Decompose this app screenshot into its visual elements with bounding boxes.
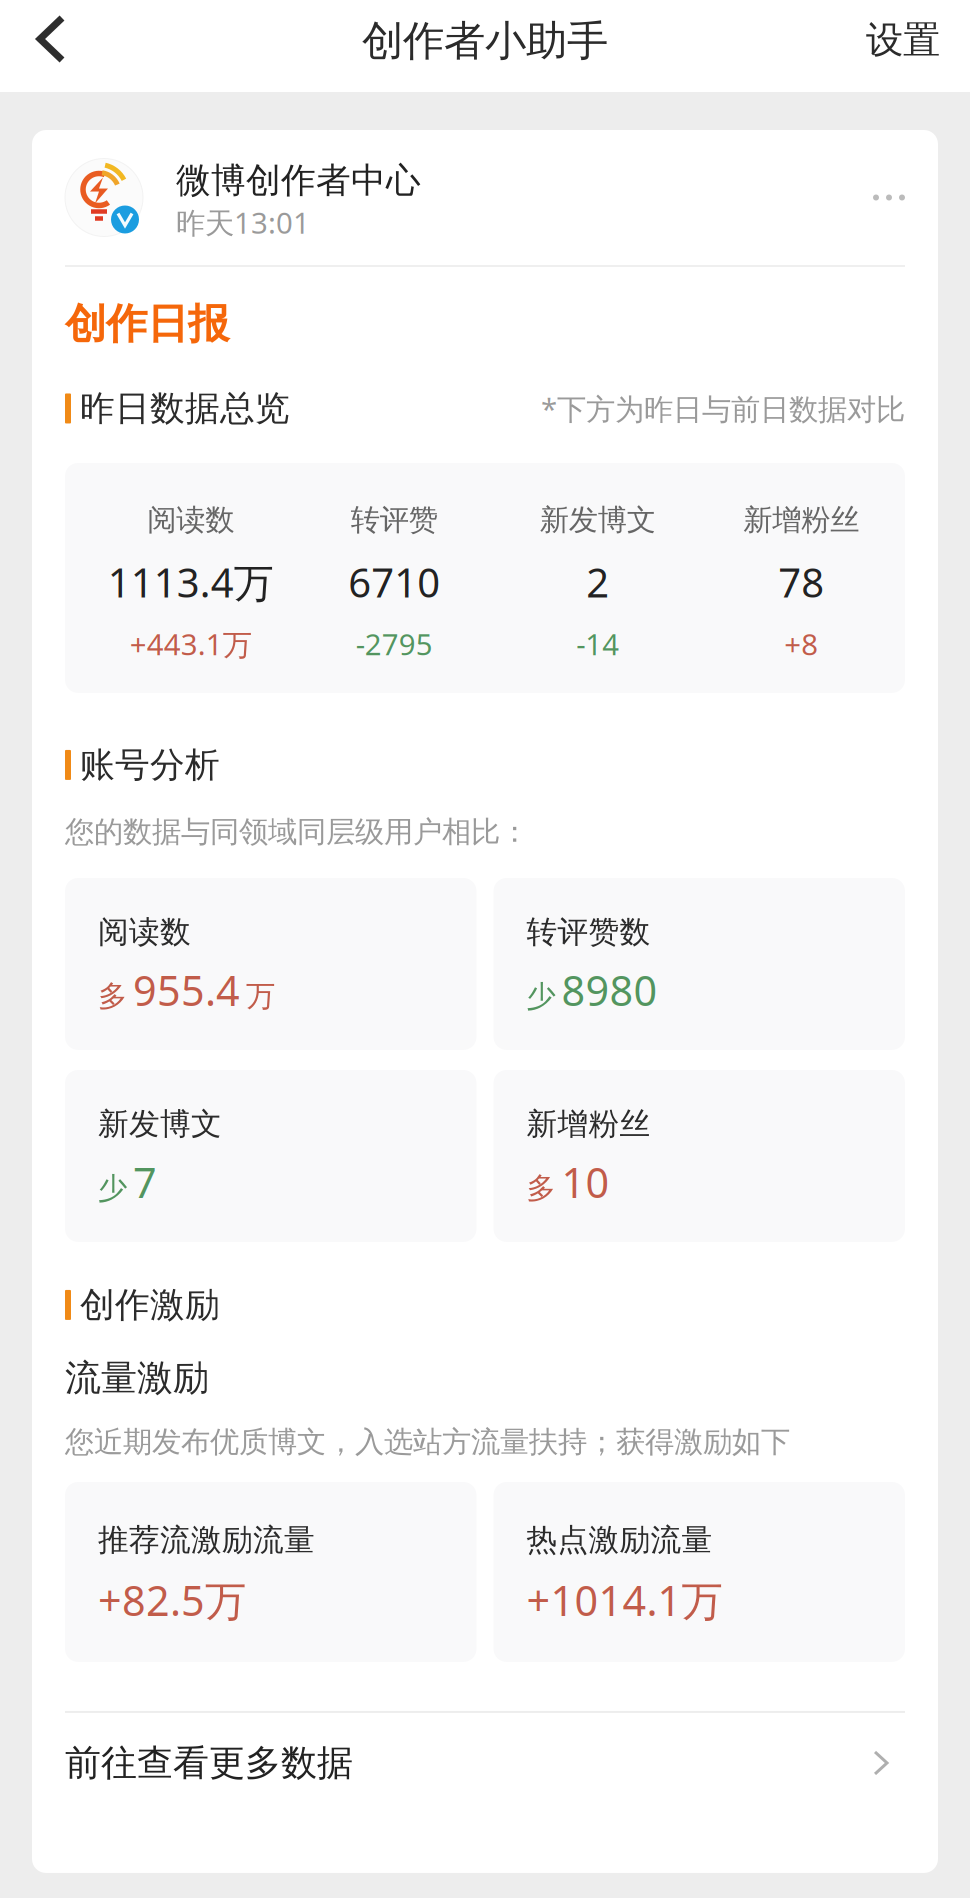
staticText: 6710 [348,555,440,608]
staticText: 7 [133,1154,157,1209]
staticText: 阅读数 [147,502,234,538]
staticText: -2795 [356,624,433,663]
staticText: 昨天13:01 [176,203,310,242]
staticText: 前往查看更多数据 [65,1741,353,1785]
staticText: 流量激励 [65,1356,209,1400]
staticText: 创作日报 [65,299,229,349]
staticText: +82.5万 [98,1572,246,1627]
staticText: 多 [526,1170,555,1206]
staticText: 1113.4万 [108,555,274,608]
staticText: 昨日数据总览 [80,387,290,430]
staticText: 万 [246,978,275,1014]
staticText: 新增粉丝 [526,1105,650,1143]
staticText: *下方为昨日与前日数据对比 [541,389,905,428]
staticText: 8980 [561,962,657,1017]
staticText: 新增粉丝 [743,502,859,538]
staticText: 新发博文 [98,1105,222,1143]
staticText: 78 [778,555,824,608]
staticText: 多 [98,978,127,1014]
staticText: 微博创作者中心 [176,159,421,202]
staticText: 设置 [866,17,940,63]
staticText: 10 [561,1154,609,1209]
button[interactable]: More options [859,180,905,214]
staticText: 创作激励 [80,1284,220,1326]
button[interactable]: Back [0,2,90,90]
staticText: 2 [586,555,609,608]
staticText: 创作者小助手 [362,16,608,66]
staticText: 您的数据与同领域同层级用户相比： [65,814,529,850]
staticText: 转评赞数 [526,913,650,951]
staticText: +1014.1万 [526,1572,722,1627]
staticText: 您近期发布优质博文，入选站方流量扶持；获得激励如下 [65,1424,790,1460]
staticText: 推荐流激励流量 [98,1521,315,1559]
staticText: 少 [526,978,555,1014]
staticText: +8 [784,624,818,663]
staticText: 转评赞 [351,502,438,538]
button[interactable]: 前往查看更多数据 [32,1713,938,1813]
staticText: +443.1万 [130,624,252,663]
staticText: 新发博文 [540,502,656,538]
staticText: 955.4 [133,962,240,1017]
staticText: -14 [576,624,619,663]
staticText: 账号分析 [80,744,220,786]
staticText: 少 [98,1170,127,1206]
button[interactable]: 设置 [842,3,970,89]
staticText: 热点激励流量 [526,1521,712,1559]
staticText: 阅读数 [98,913,191,951]
